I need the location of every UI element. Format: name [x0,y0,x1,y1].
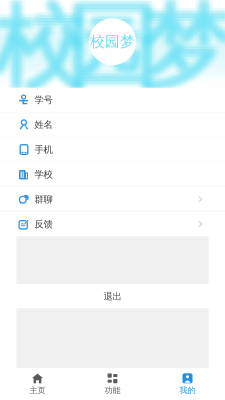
staticText: 我的 [179,385,195,395]
staticText: 梦 [145,0,225,106]
staticText: 梦 [138,0,225,97]
staticText: 园 [69,0,162,97]
staticText: 校 [0,0,89,105]
staticText: 园 [69,0,162,101]
staticText: 校 [0,0,90,103]
staticText: 校 [0,0,85,97]
staticText: 校 [0,0,87,106]
staticText: 梦 [145,0,225,99]
staticText: 园 [62,0,155,99]
staticText: 主页 [29,385,45,395]
staticText: 功能 [104,385,120,395]
staticText: 梦 [140,0,225,106]
staticText: 梦 [137,0,225,103]
staticText: 反馈 [34,218,52,230]
staticText: 校 [0,0,89,97]
staticText: 校 [0,0,82,106]
staticText: 退出 [103,290,121,302]
button[interactable]: 主页 [0,368,75,400]
staticText: 园 [61,0,154,103]
staticText: 园 [72,0,165,106]
staticText: 校 [0,0,87,100]
staticText: 梦 [146,0,225,103]
staticText: 园 [73,0,166,103]
staticText: 园 [69,0,162,105]
button[interactable]: 退出 [0,284,225,308]
staticText: 校 [0,0,82,99]
staticText: 园 [65,0,158,97]
staticText: 梦 [135,0,225,99]
button[interactable]: 学校 [0,162,225,187]
staticText: 姓名 [34,119,52,130]
button[interactable]: 功能 [75,368,150,400]
staticText: 梦 [135,0,225,106]
staticText: 校 [0,0,84,103]
staticText: 园 [72,0,165,99]
button[interactable]: 姓名 [0,113,225,137]
staticText: 梦 [140,0,225,103]
staticText: 校 [0,0,81,103]
staticText: 学号 [34,94,52,106]
staticText: 园 [69,0,162,109]
staticText: 校 [0,0,85,101]
staticText: 园 [64,0,157,103]
staticText: 群聊 [34,193,52,205]
staticText: 梦 [138,0,225,109]
staticText: 园 [62,0,155,106]
staticText: 校 [0,0,85,105]
staticText: 梦 [142,0,225,101]
staticText: 梦 [134,0,225,103]
staticText: 校 [0,0,93,103]
staticText: 梦 [142,0,225,105]
staticText: 校 [0,0,92,106]
staticText: 学校 [34,169,52,180]
button[interactable]: 反馈 [0,212,225,236]
staticText: 校园梦 [90,33,135,51]
staticText: 园 [65,0,158,105]
staticText: 校 [0,0,89,101]
staticText: 园 [67,0,160,103]
staticText: 园 [65,0,158,109]
staticText: 梦 [138,0,225,105]
button[interactable]: 学号 [0,88,225,112]
staticText: 梦 [138,0,225,101]
staticText: 校 [0,0,85,109]
staticText: 梦 [143,0,225,103]
staticText: 园 [67,0,160,106]
staticText: 梦 [140,0,225,100]
staticText: 校 [0,0,89,109]
button[interactable]: 我的 [150,368,225,400]
staticText: 校 [0,0,92,99]
button[interactable]: 群聊 [0,187,225,211]
staticText: 园 [67,0,160,100]
button[interactable]: 手机 [0,137,225,162]
staticText: 校 [0,0,87,103]
staticText: 园 [70,0,163,103]
staticText: 梦 [142,0,225,109]
staticText: 园 [65,0,158,101]
staticText: 梦 [142,0,225,97]
staticText: 手机 [34,144,52,155]
